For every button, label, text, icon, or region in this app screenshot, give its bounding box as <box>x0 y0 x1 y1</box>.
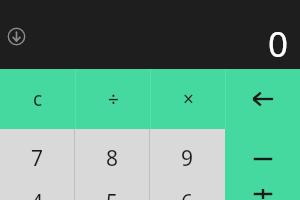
button[interactable]: 7 <box>0 129 74 188</box>
staticText: ÷ <box>108 86 119 112</box>
staticText: 0 <box>268 20 289 68</box>
button[interactable]: 6 <box>150 188 225 200</box>
button[interactable]: Backspace <box>226 69 300 129</box>
button[interactable]: 8 <box>75 129 149 188</box>
staticText: 4 <box>31 188 44 200</box>
button[interactable]: × <box>151 69 225 129</box>
button[interactable]: History <box>7 27 26 46</box>
button[interactable]: c <box>0 69 75 129</box>
button[interactable]: ÷ <box>76 69 150 129</box>
button[interactable]: 5 <box>75 188 149 200</box>
button[interactable]: 4 <box>0 188 74 200</box>
staticText: 6 <box>181 188 194 200</box>
staticText: 7 <box>31 144 44 173</box>
staticText: 9 <box>181 144 194 173</box>
staticText: 5 <box>106 188 119 200</box>
staticText: × <box>183 86 194 112</box>
button[interactable]: Minus <box>225 129 300 188</box>
staticText: 8 <box>106 144 119 173</box>
button[interactable]: Plus <box>225 188 300 200</box>
staticText: c <box>33 86 43 112</box>
button[interactable]: 9 <box>150 129 225 188</box>
